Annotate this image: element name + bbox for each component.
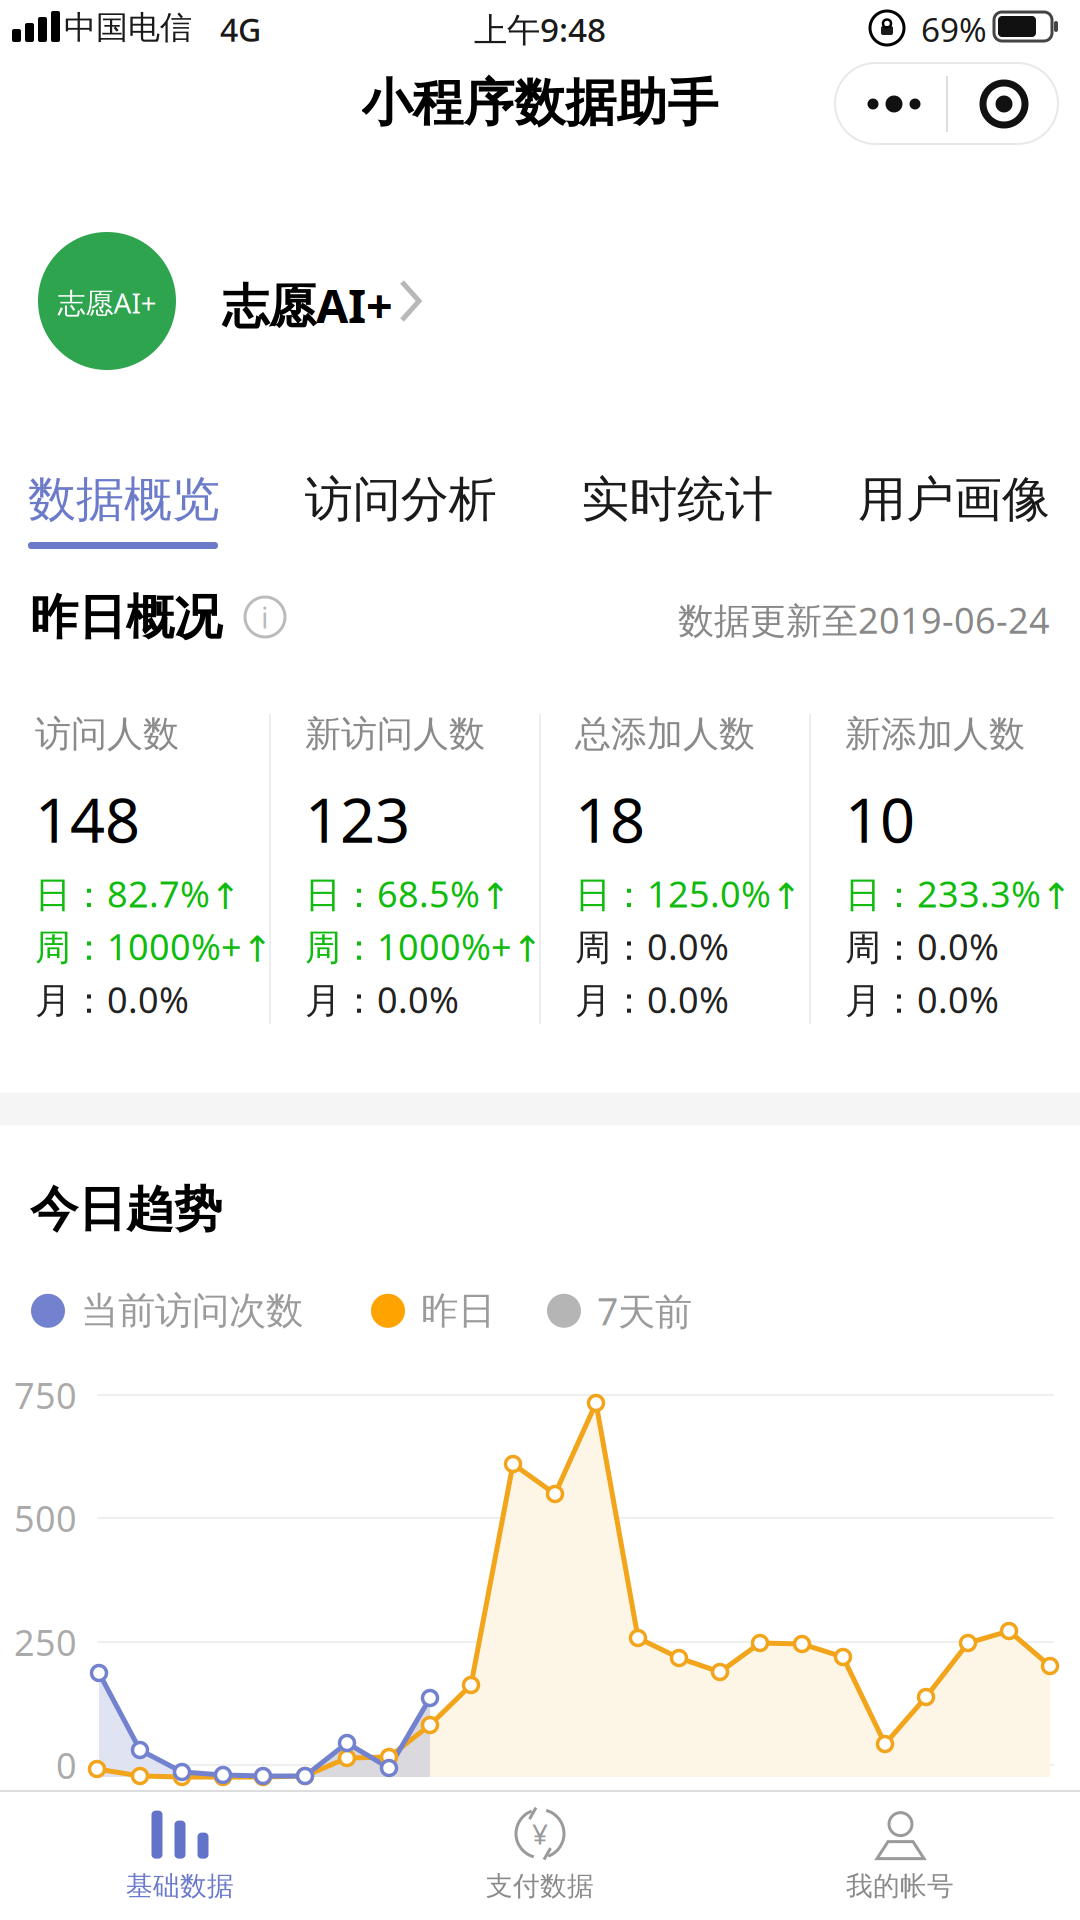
staticText: 总添加人数	[575, 712, 755, 756]
staticText: 月：0.0%	[35, 975, 189, 1023]
staticText: 0	[56, 1741, 77, 1789]
staticText: 69%	[921, 7, 987, 51]
staticText: 实时统计	[581, 470, 773, 529]
button[interactable]: 说明	[245, 597, 285, 637]
staticText: 7天前	[597, 1286, 692, 1336]
staticText: 周：0.0%	[845, 922, 999, 970]
staticText: ¥	[532, 1815, 548, 1852]
staticText: 访问分析	[305, 470, 497, 529]
staticText: i	[261, 597, 269, 636]
staticText: 支付数据	[486, 1870, 594, 1902]
staticText: 昨日	[421, 1288, 495, 1334]
staticText: 148	[35, 778, 140, 860]
staticText: 小程序数据助手	[361, 72, 718, 134]
staticText: 当前访问次数	[81, 1288, 303, 1334]
staticText: 123	[305, 778, 410, 860]
staticText: 750	[14, 1371, 77, 1419]
staticText: 10	[845, 778, 915, 860]
staticText: 周：1000%+↑	[35, 922, 272, 970]
staticText: 中国电信	[64, 8, 192, 47]
staticText: 日：125.0%↑	[575, 870, 801, 917]
staticText: 250	[14, 1618, 77, 1666]
staticText: 基础数据	[126, 1870, 234, 1902]
staticText: 数据概览	[28, 470, 220, 529]
button[interactable]: 基础数据	[30, 1799, 330, 1911]
button[interactable]: 访问分析	[305, 470, 497, 529]
staticText: 用户画像	[858, 470, 1050, 529]
staticText: 月：0.0%	[305, 975, 459, 1023]
staticText: 今日趋势	[30, 1180, 222, 1239]
staticText: 18	[575, 778, 645, 860]
button[interactable]: 更多与关闭	[835, 63, 1058, 144]
staticText: 月：0.0%	[845, 975, 999, 1023]
staticText: 500	[14, 1494, 77, 1542]
button[interactable]: 我的帐号	[750, 1799, 1050, 1911]
staticText: 新访问人数	[305, 712, 485, 756]
staticText: 上午9:48	[474, 7, 606, 51]
staticText: 访问人数	[35, 712, 179, 756]
staticText: 4G	[220, 8, 261, 50]
staticText: 数据更新至2019-06-24	[678, 596, 1050, 644]
staticText: 周：0.0%	[575, 922, 729, 970]
button[interactable]: 数据概览	[28, 470, 220, 529]
button[interactable]: 志愿AI+	[0, 232, 422, 370]
button[interactable]: ¥	[390, 1799, 690, 1911]
staticText: 昨日概况	[30, 588, 222, 647]
staticText: 志愿AI+	[57, 284, 156, 321]
staticText: 周：1000%+↑	[305, 922, 542, 970]
staticText: 志愿AI+	[222, 274, 393, 336]
staticText: 日：233.3%↑	[845, 870, 1071, 917]
button[interactable]: 实时统计	[581, 470, 773, 529]
staticText: 月：0.0%	[575, 975, 729, 1023]
staticText: 新添加人数	[845, 712, 1025, 756]
staticText: 日：68.5%↑	[305, 870, 510, 917]
staticText: 我的帐号	[846, 1870, 954, 1902]
button[interactable]: 用户画像	[858, 470, 1050, 529]
staticText: 日：82.7%↑	[35, 870, 240, 917]
